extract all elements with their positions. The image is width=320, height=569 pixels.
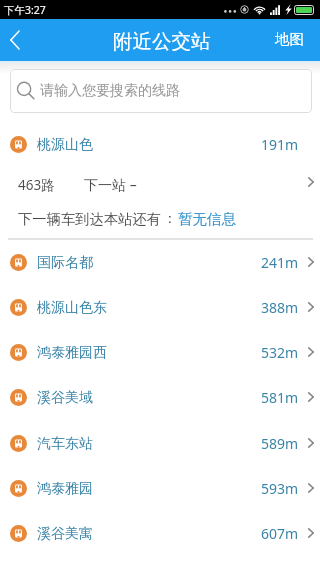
staticText: 国际名都 (37, 254, 93, 272)
staticText: 暂无信息 (178, 210, 236, 228)
staticText: 鸿泰雅园 (37, 480, 93, 498)
staticText: 581m (261, 388, 299, 407)
staticText: 589m (261, 434, 299, 453)
button[interactable]: 返回 (0, 19, 42, 61)
button[interactable]: 463路 (0, 162, 320, 207)
staticText: 607m (261, 524, 299, 543)
button[interactable]: 国际名都 (0, 240, 320, 285)
staticText: 溪谷美域 (37, 389, 93, 407)
staticText: 241m (261, 253, 299, 272)
button[interactable]: 溪谷美寓 (0, 511, 320, 556)
staticText: 593m (261, 479, 299, 498)
button[interactable]: 请输入您要搜索的线路 (10, 69, 312, 113)
staticText: 鸿泰雅园西 (37, 344, 107, 362)
button[interactable]: 溪谷美域 (0, 375, 320, 420)
staticText: 溪谷美寓 (37, 525, 93, 543)
staticText: 请输入您要搜索的线路 (40, 82, 180, 100)
staticText: 下一站 – (84, 175, 137, 194)
button[interactable]: 地图 (260, 19, 319, 59)
staticText: 532m (261, 343, 299, 362)
button[interactable]: 桃源山色东 (0, 285, 320, 330)
button[interactable]: 桃源山色 (0, 127, 320, 162)
button[interactable]: 鸿泰雅园西 (0, 330, 320, 375)
staticText: 191m (261, 135, 299, 154)
staticText: 桃源山色 (37, 136, 93, 154)
staticText: ： (163, 210, 177, 228)
button[interactable]: 鸿泰雅园 (0, 466, 320, 511)
button[interactable]: 汽车东站 (0, 421, 320, 466)
staticText: 下午3:27 (4, 3, 46, 17)
staticText: 桃源山色东 (37, 299, 107, 317)
staticText: 388m (261, 298, 299, 317)
staticText: 463路 (18, 176, 55, 194)
staticText: 地图 (275, 30, 304, 48)
staticText: 下一辆车到达本站还有 (18, 210, 161, 228)
staticText: 汽车东站 (37, 435, 93, 453)
staticText: 附近公交站 (113, 29, 211, 54)
